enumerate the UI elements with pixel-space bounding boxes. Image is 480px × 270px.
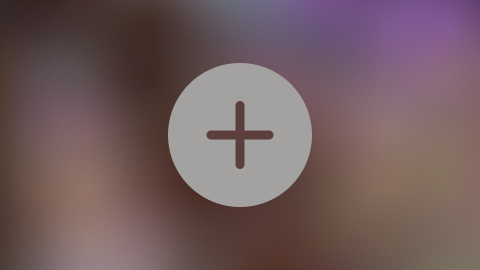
- button[interactable]: Add: [168, 63, 312, 207]
